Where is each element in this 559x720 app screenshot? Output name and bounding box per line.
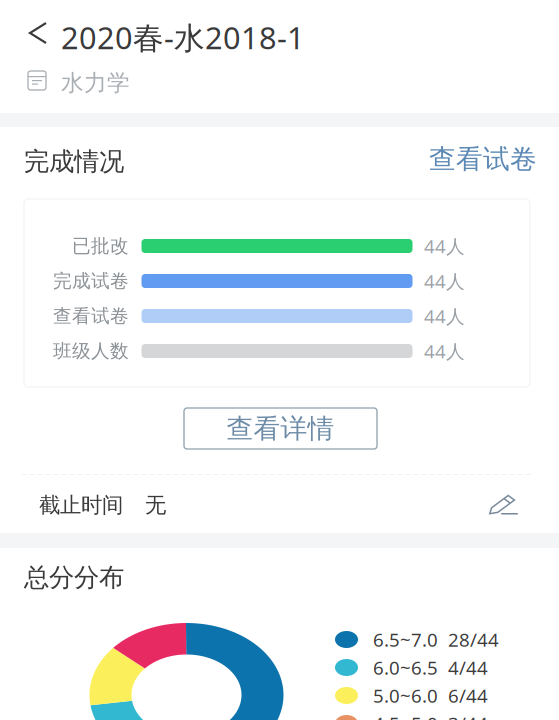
staticText: 班级人数	[53, 339, 129, 362]
staticText: 44人	[424, 304, 465, 328]
staticText: 4.5~5.0 3/44	[373, 711, 488, 720]
staticText: 6.0~6.5 4/44	[373, 655, 488, 680]
staticText: 总分分布	[24, 562, 124, 593]
staticText: 查看详情	[226, 412, 334, 445]
staticText: 2020春-水2018-1	[61, 17, 305, 58]
staticText: 44人	[424, 269, 465, 293]
staticText: 已批改	[72, 234, 129, 257]
staticText: 查看试卷	[429, 143, 537, 175]
staticText: 无	[145, 492, 166, 518]
button[interactable]: 查看详情	[184, 408, 377, 449]
staticText: 完成情况	[24, 146, 124, 177]
staticText: 6.5~7.0 28/44	[373, 627, 499, 652]
staticText: 5.0~6.0 6/44	[373, 683, 488, 708]
button[interactable]: 查看试卷	[427, 142, 537, 176]
staticText: 查看试卷	[53, 304, 129, 327]
button[interactable]: Back	[16, 11, 62, 55]
staticText: 44人	[424, 339, 465, 363]
staticText: 截止时间	[39, 492, 123, 518]
staticText: 完成试卷	[53, 269, 129, 292]
staticText: 44人	[424, 234, 465, 258]
staticText: 水力学	[61, 69, 130, 97]
button[interactable]: Edit	[488, 490, 532, 524]
